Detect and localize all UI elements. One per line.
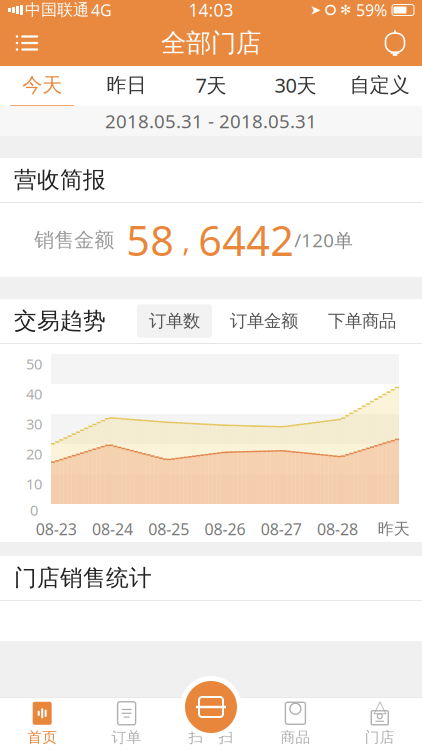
staticText: 交易趋势 — [14, 307, 106, 335]
staticText: 08-28 — [317, 518, 358, 540]
staticText: 首页 — [27, 728, 57, 746]
staticText: 门店 — [365, 728, 395, 746]
staticText: 08-23 — [36, 518, 77, 540]
button[interactable]: 商品 — [253, 698, 338, 750]
staticText: , — [174, 220, 198, 259]
button[interactable]: 订单金额 — [218, 304, 310, 338]
staticText: 14:03 — [188, 0, 233, 21]
button[interactable]: 首页 — [0, 698, 84, 750]
staticText: 08-25 — [148, 518, 189, 540]
staticText: 销售金额 — [34, 228, 114, 252]
button[interactable]: 扫一扫 — [179, 675, 243, 739]
staticText: ✻ — [340, 2, 351, 17]
button[interactable]: 下单商品 — [316, 304, 408, 338]
staticText: 50 — [26, 354, 42, 373]
staticText: 7天 — [195, 72, 226, 98]
button[interactable]: 2018.05.31 - 2018.05.31 — [0, 106, 422, 136]
staticText: 今天 — [22, 73, 62, 97]
staticText: 自定义 — [350, 73, 410, 97]
staticText: 08-27 — [261, 518, 302, 540]
staticText: 门店销售统计 — [14, 564, 152, 592]
button[interactable]: 自定义 — [338, 66, 422, 106]
staticText: 订单 — [112, 728, 142, 746]
staticText: 全部门店 — [161, 27, 261, 58]
staticText: 08-26 — [204, 518, 245, 540]
staticText: 0 — [30, 500, 38, 520]
staticText: 下单商品 — [328, 310, 396, 332]
staticText: 商品 — [280, 728, 310, 746]
staticText: △ — [373, 696, 386, 716]
button[interactable]: 订单 — [84, 698, 169, 750]
button[interactable]: 通知 — [368, 20, 422, 66]
button[interactable]: 菜单 — [0, 20, 54, 66]
button[interactable]: 昨日 — [84, 66, 169, 106]
staticText: /120单 — [294, 228, 353, 252]
staticText: 4G — [91, 0, 112, 21]
staticText: 昨日 — [107, 73, 147, 97]
button[interactable]: 今天 — [0, 66, 84, 106]
button[interactable]: 订单数 — [137, 304, 212, 338]
staticText: 40 — [26, 384, 42, 403]
staticText: 扫一扫 — [188, 728, 233, 746]
button[interactable]: 30天 — [253, 66, 338, 106]
staticText: 30 — [26, 414, 42, 433]
staticText: 59% — [356, 0, 387, 21]
staticText: 6442 — [198, 213, 294, 267]
staticText: ➤ — [310, 2, 321, 17]
staticText: 58 — [126, 213, 174, 267]
button[interactable]: △ — [338, 698, 422, 750]
staticText: 2018.05.31 - 2018.05.31 — [105, 109, 317, 133]
staticText: 30天 — [274, 72, 316, 98]
button[interactable]: 7天 — [169, 66, 253, 106]
staticText: 20 — [26, 444, 42, 463]
staticText: 10 — [26, 474, 42, 493]
staticText: 营收简报 — [14, 166, 106, 194]
staticText: 中国联通 — [25, 0, 89, 20]
staticText: 昨天 — [378, 519, 410, 539]
staticText: 订单数 — [149, 310, 200, 332]
staticText: 订单金额 — [230, 310, 298, 332]
staticText: 08-24 — [92, 518, 133, 540]
